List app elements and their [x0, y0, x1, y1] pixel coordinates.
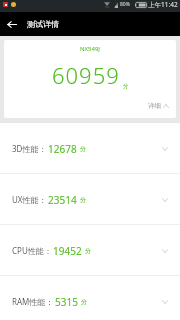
staticText: UX性能： — [12, 194, 47, 205]
staticText: 分 — [81, 298, 87, 306]
staticText: RAM性能： — [12, 296, 54, 307]
staticText: 分 — [80, 145, 86, 153]
staticText: 分 — [123, 83, 129, 90]
staticText: 分 — [80, 196, 86, 204]
button[interactable]: CPU性能： — [0, 225, 180, 276]
staticText: 上午11:42 — [148, 0, 178, 9]
staticText: 3D性能： — [12, 143, 47, 154]
button[interactable]: UX性能： — [0, 174, 180, 225]
staticText: 12678 — [48, 142, 77, 156]
staticText: NX549J — [80, 45, 101, 53]
staticText: 19452 — [53, 244, 82, 258]
staticText: 60959 — [52, 60, 120, 90]
staticText: 分 — [85, 247, 91, 255]
staticText: 详细 — [148, 102, 161, 110]
staticText: 80% — [120, 1, 130, 8]
button[interactable]: RAM性能： — [0, 276, 180, 320]
button[interactable]: 详细 — [148, 102, 176, 118]
staticText: CPU性能： — [12, 245, 52, 256]
staticText: 5315 — [55, 295, 78, 309]
staticText: 23514 — [48, 193, 77, 207]
button[interactable]: 3D性能： — [0, 123, 180, 174]
staticText: 测试详情 — [27, 19, 59, 29]
button[interactable]: Back — [0, 12, 24, 36]
